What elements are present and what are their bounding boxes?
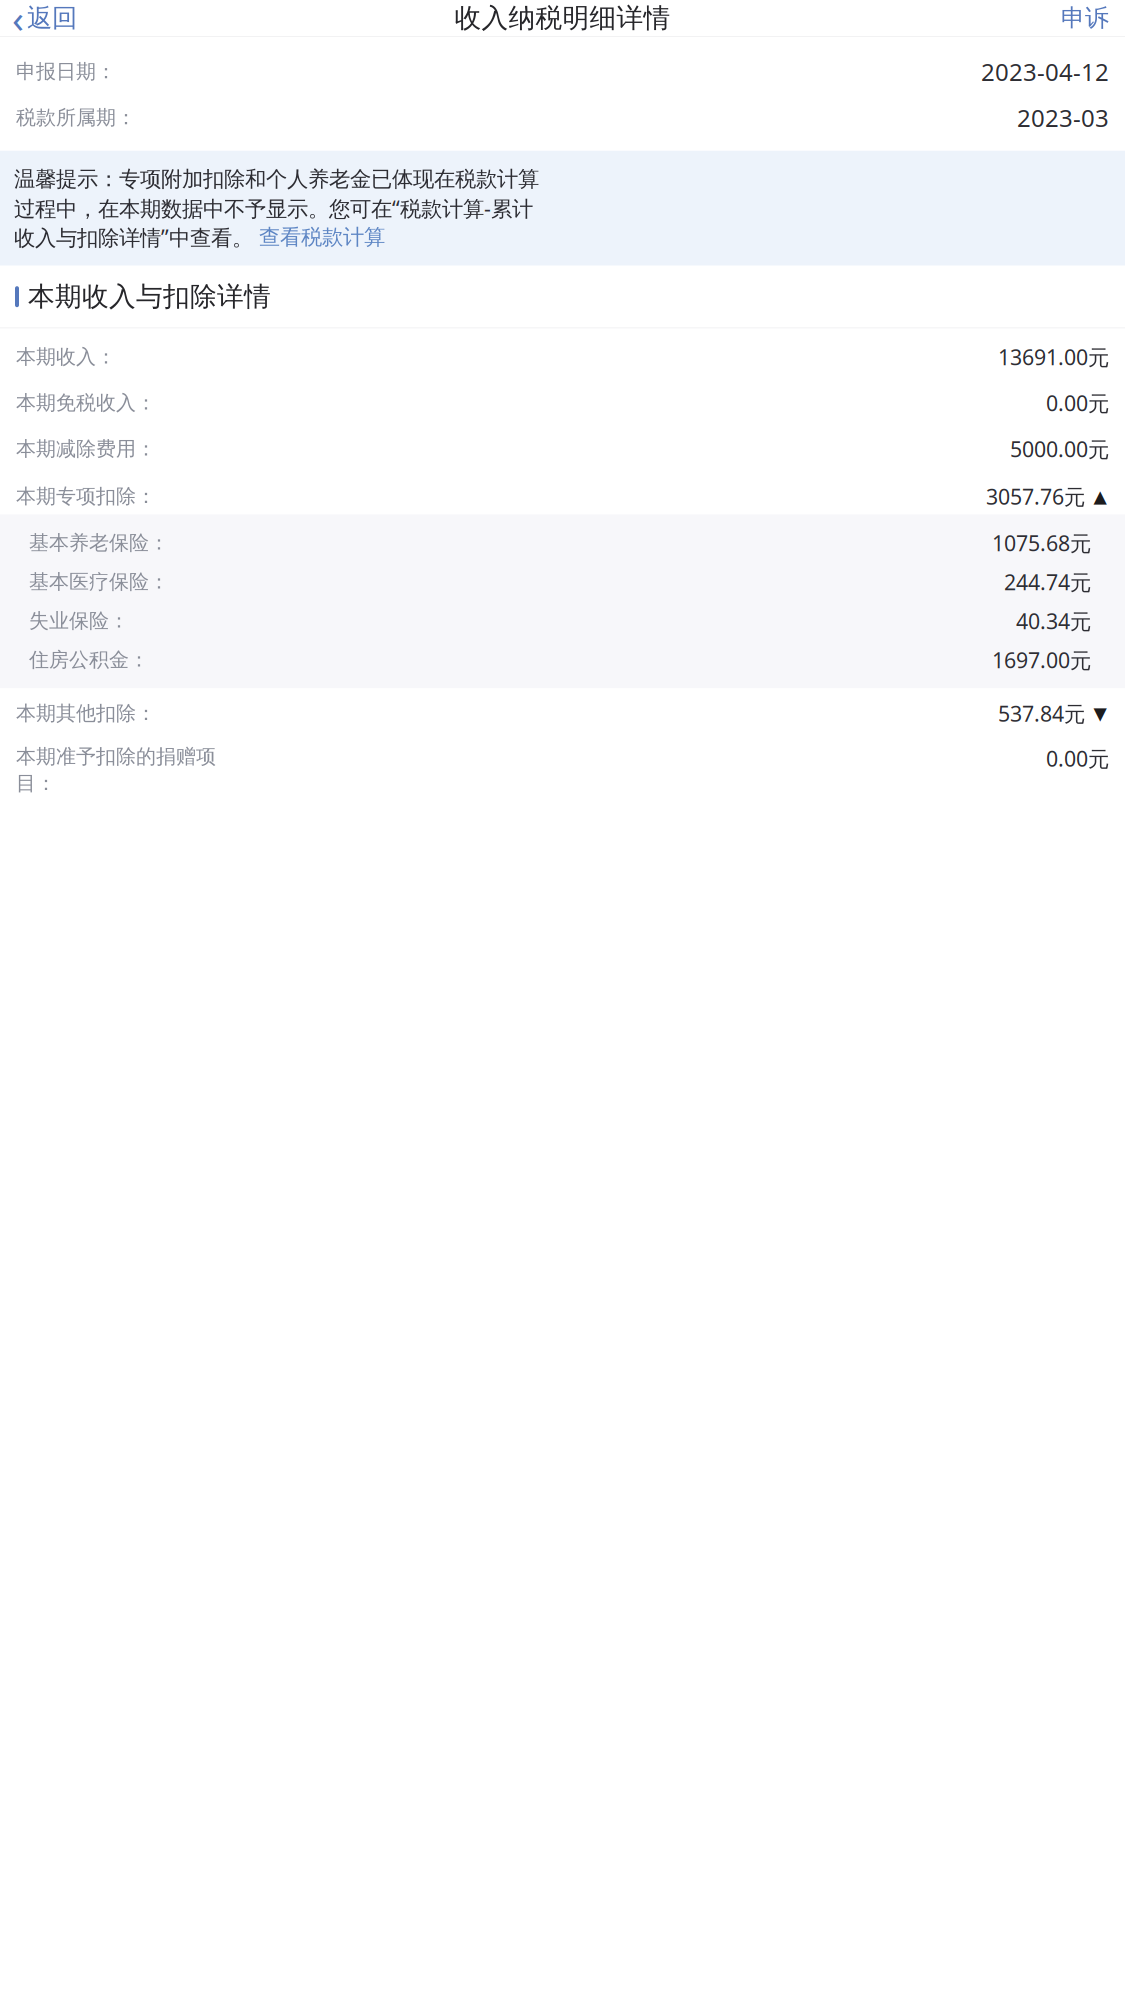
staticText: 查看税款计算: [259, 224, 385, 250]
staticText: 申报日期：: [16, 59, 116, 84]
staticText: ‹: [12, 0, 24, 44]
staticText: 5000.00元: [1010, 435, 1109, 463]
staticText: 基本养老保险：: [29, 531, 169, 555]
staticText: 申诉: [1061, 3, 1109, 33]
button[interactable]: 申诉: [1045, 0, 1125, 36]
staticText: 244.74元: [1004, 568, 1091, 596]
staticText: 本期准予扣除的捐赠项: [16, 744, 216, 769]
button[interactable]: 本期其他扣除：: [0, 696, 1125, 730]
button[interactable]: 查看税款计算: [253, 223, 385, 252]
staticText: 2023-04-12: [981, 56, 1109, 88]
staticText: 0.00元: [1046, 744, 1109, 773]
staticText: 3057.76元: [986, 482, 1085, 510]
staticText: 失业保险：: [29, 609, 129, 633]
staticText: 1697.00元: [992, 646, 1091, 674]
staticText: 税款所属期：: [16, 105, 136, 130]
staticText: 40.34元: [1016, 607, 1091, 635]
staticText: 本期收入：: [16, 345, 116, 369]
staticText: 0.00元: [1046, 389, 1109, 417]
staticText: ▲: [1093, 487, 1106, 506]
staticText: 收入纳税明细详情: [454, 2, 670, 34]
staticText: 本期免税收入：: [16, 391, 156, 415]
staticText: 本期专项扣除：: [16, 484, 156, 509]
staticText: 过程中，在本期数据中不予显示。您可在“税款计算-累计: [14, 194, 533, 222]
staticText: 2023-03: [1017, 102, 1109, 134]
staticText: 温馨提示：专项附加扣除和个人养老金已体现在税款计算: [14, 166, 539, 192]
staticText: 返回: [27, 2, 77, 33]
staticText: 537.84元: [998, 699, 1085, 727]
staticText: 收入与扣除详情”中查看。: [14, 223, 253, 251]
staticText: 本期其他扣除：: [16, 701, 156, 726]
staticText: 目：: [16, 771, 56, 796]
button[interactable]: ‹: [0, 0, 89, 36]
staticText: ▼: [1093, 704, 1106, 723]
staticText: 住房公积金：: [29, 648, 149, 672]
button[interactable]: 本期专项扣除：: [0, 478, 1125, 514]
staticText: 基本医疗保险：: [29, 570, 169, 594]
staticText: 1075.68元: [992, 529, 1091, 557]
staticText: 本期减除费用：: [16, 437, 156, 461]
staticText: 13691.00元: [998, 343, 1109, 371]
staticText: 本期收入与扣除详情: [28, 280, 271, 313]
